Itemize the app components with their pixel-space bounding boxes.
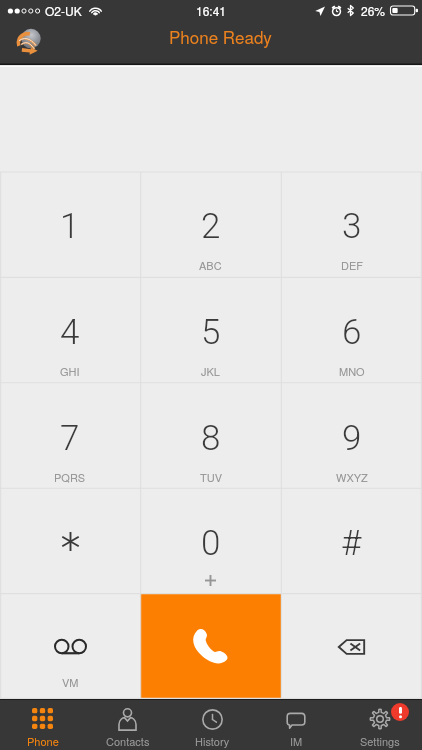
staticText: Contacts — [106, 733, 150, 749]
staticText: Phone Ready — [169, 24, 272, 48]
button[interactable]: IM — [254, 699, 338, 750]
staticText: 4 — [60, 312, 80, 353]
staticText: 8 — [201, 418, 221, 459]
staticText: 3 — [342, 206, 362, 247]
staticText: GHI — [60, 363, 80, 379]
staticText: 5 — [201, 312, 221, 353]
button[interactable]: 8 — [140, 384, 281, 489]
staticText: JKL — [201, 363, 220, 379]
button[interactable]: 4 — [0, 278, 140, 384]
staticText: Phone — [27, 733, 59, 749]
staticText: DEF — [341, 257, 363, 273]
staticText: # — [341, 523, 362, 564]
staticText: 7 — [60, 418, 80, 459]
button[interactable]: 9 — [281, 384, 422, 489]
staticText: ABC — [199, 257, 222, 273]
button[interactable]: 2 — [140, 172, 281, 278]
staticText: TUV — [200, 469, 222, 485]
staticText: O2-UK — [45, 2, 82, 19]
button[interactable]: 7 — [0, 384, 140, 489]
staticText: 0 — [201, 523, 221, 564]
button[interactable]: # — [281, 489, 422, 594]
staticText: Settings — [360, 733, 400, 749]
button[interactable]: 1 — [0, 172, 140, 278]
button[interactable]: Contacts — [85, 699, 170, 750]
button[interactable] — [0, 489, 140, 594]
button[interactable]: History — [170, 699, 254, 750]
staticText: History — [195, 733, 230, 749]
staticText: 16:41 — [196, 2, 227, 19]
button[interactable]: Call — [140, 594, 281, 699]
staticText: MNO — [339, 363, 365, 379]
staticText: 6 — [342, 312, 362, 353]
button[interactable]: Backspace — [281, 594, 422, 699]
button[interactable]: 3 — [281, 172, 422, 278]
staticText: PQRS — [54, 469, 86, 485]
staticText: IM — [290, 733, 303, 749]
staticText: 2 — [201, 206, 221, 247]
button[interactable]: Voicemail — [0, 594, 140, 699]
staticText: 9 — [342, 418, 362, 459]
button[interactable]: Phone — [0, 699, 85, 750]
staticText: 1 — [60, 206, 80, 247]
staticText: WXYZ — [336, 469, 368, 485]
staticText: VM — [62, 674, 79, 690]
button[interactable]: 0 — [140, 489, 281, 594]
button[interactable]: Settings — [338, 699, 422, 750]
button[interactable]: 6 — [281, 278, 422, 384]
staticText: 26% — [361, 2, 386, 19]
button[interactable]: 5 — [140, 278, 281, 384]
